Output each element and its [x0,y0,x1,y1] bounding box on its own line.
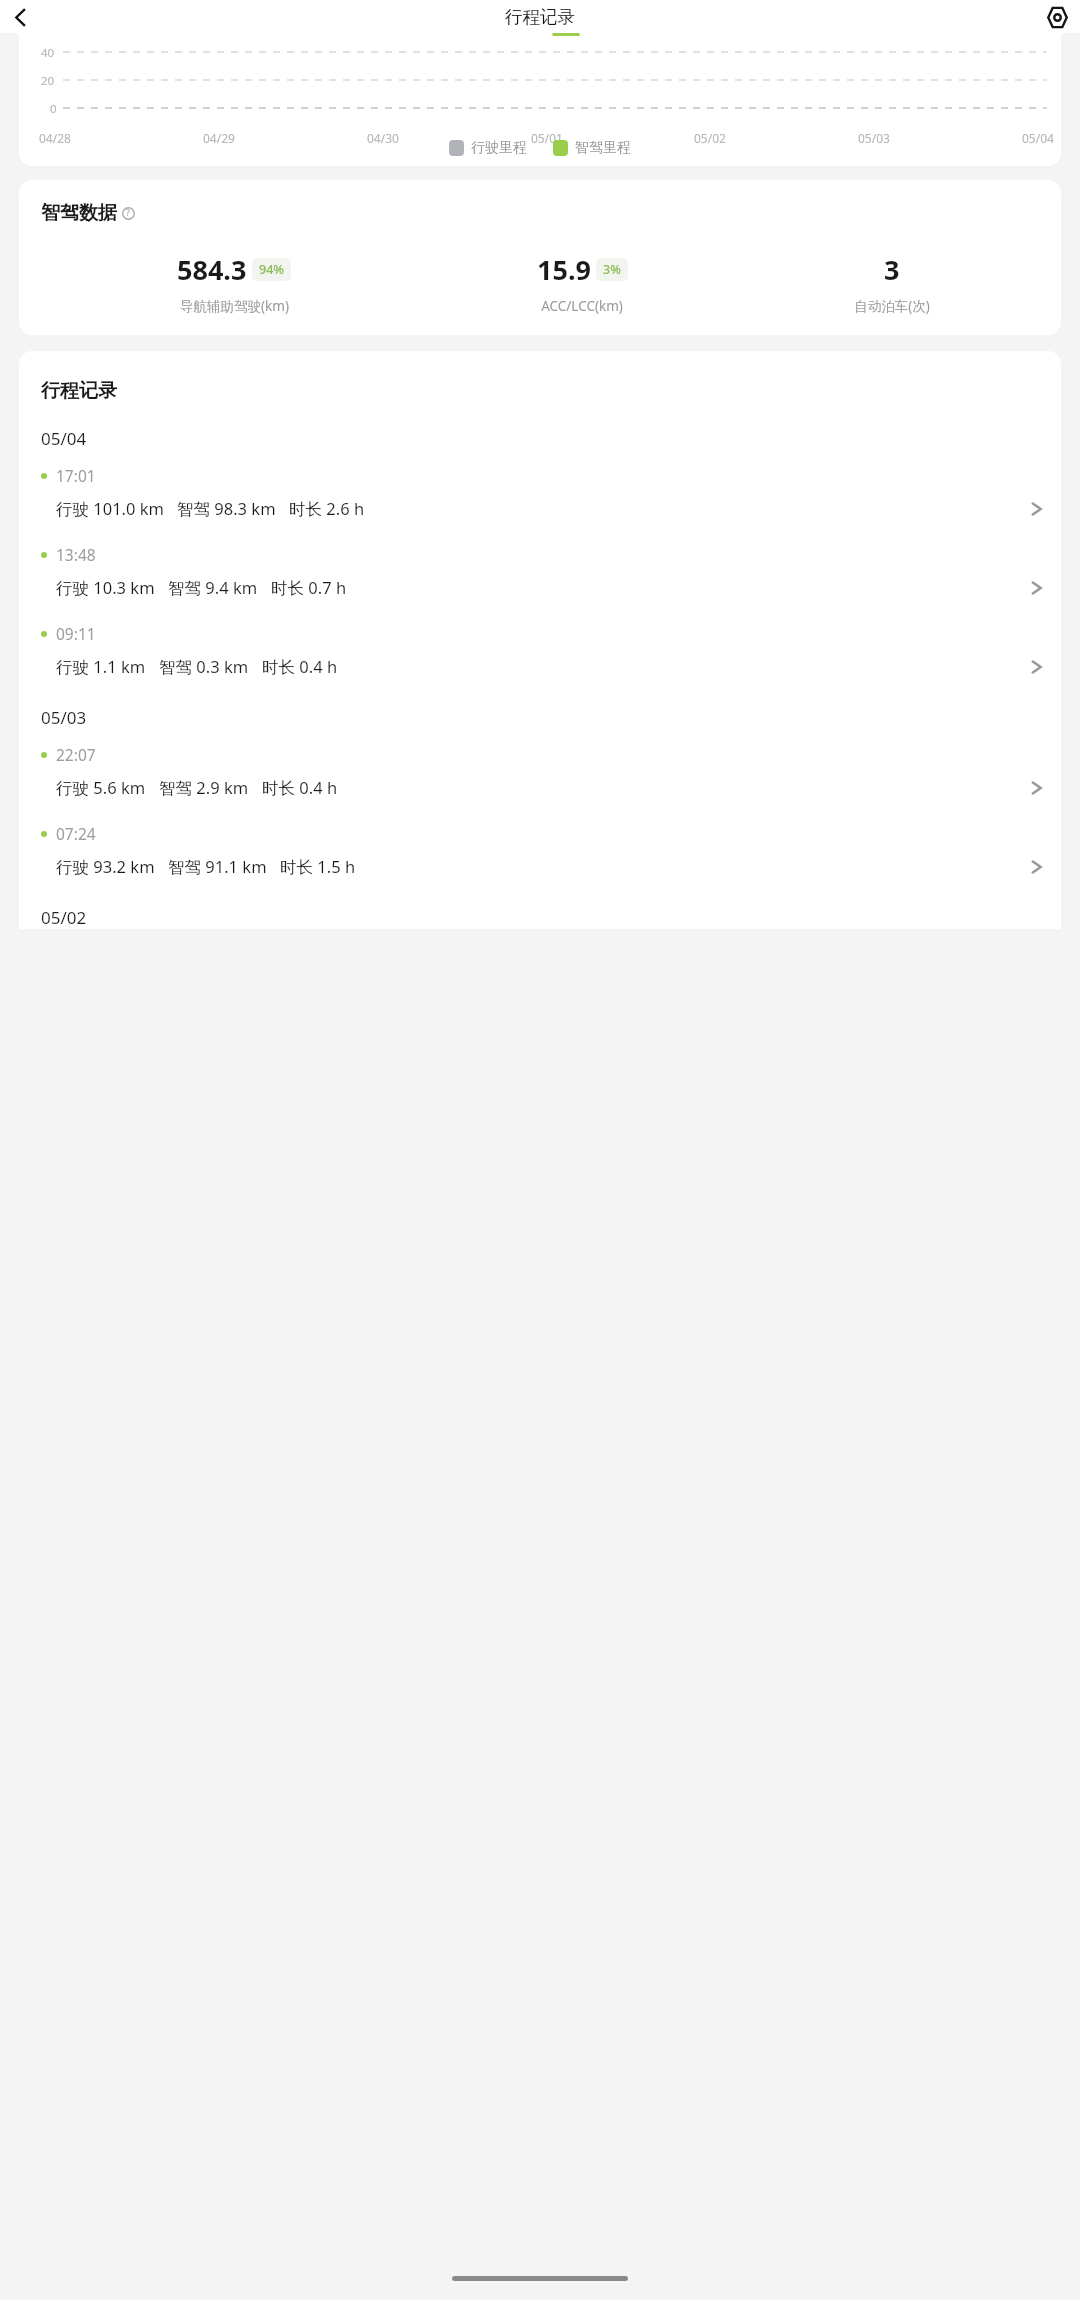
staticText: 时长 0.7 h [271,576,347,599]
staticText: 行驶 101.0 km [56,497,164,520]
staticText: 智驾 2.9 km [159,776,249,799]
button[interactable]: 17:01 [41,465,1047,520]
staticText: 导航辅助驾驶(km) [180,297,289,315]
staticText: 04/29 [203,130,235,146]
staticText: 行驶 93.2 km [56,855,155,878]
staticText: 行驶 1.1 km [56,655,146,678]
button[interactable]: 22:07 [41,744,1047,799]
staticText: ? [126,207,130,219]
staticText: 自动泊车(次) [854,297,930,315]
staticText: 3% [603,261,621,278]
staticText: 智驾 0.3 km [159,655,249,678]
button[interactable]: 07:24 [41,823,1047,878]
staticText: 时长 1.5 h [280,855,356,878]
staticText: 智驾 9.4 km [168,576,258,599]
staticText: 智驾数据 [41,201,117,225]
staticText: ACC/LCC(km) [541,297,623,315]
staticText: 0 [50,101,57,117]
staticText: 94% [259,261,284,278]
staticText: 行驶里程 [471,139,527,157]
staticText: 时长 0.4 h [262,655,338,678]
staticText: 15.9 [537,251,591,288]
staticText: 智驾 98.3 km [177,497,276,520]
button[interactable]: 说明 [120,205,136,221]
staticText: 时长 0.4 h [262,776,338,799]
button[interactable]: 09:11 [41,623,1047,678]
staticText: 05/03 [858,130,890,146]
staticText: 智驾 91.1 km [168,855,267,878]
button[interactable]: 13:48 [41,544,1047,599]
button[interactable]: Settings [1042,2,1072,32]
button[interactable]: Back [5,2,35,32]
staticText: 05/02 [41,906,87,929]
staticText: 时长 2.6 h [289,497,365,520]
staticText: 40 [41,45,55,61]
staticText: 17:01 [56,465,96,486]
staticText: 智驾里程 [575,139,631,157]
staticText: 05/02 [694,130,726,146]
staticText: 行驶 10.3 km [56,576,155,599]
staticText: 09:11 [56,623,96,644]
staticText: 行驶 5.6 km [56,776,146,799]
staticText: 05/04 [1022,130,1054,146]
staticText: 07:24 [56,823,96,844]
staticText: 3 [884,251,900,288]
staticText: 04/28 [39,130,71,146]
staticText: 584.3 [177,251,247,288]
staticText: 22:07 [56,744,96,765]
staticText: 04/30 [367,130,399,146]
staticText: 05/01 [531,130,563,146]
staticText: 行程记录 [41,379,117,403]
staticText: 05/03 [41,706,87,729]
staticText: 05/04 [41,427,87,450]
staticText: 20 [41,73,55,89]
staticText: 行程记录 [505,6,575,28]
staticText: 13:48 [56,544,96,565]
